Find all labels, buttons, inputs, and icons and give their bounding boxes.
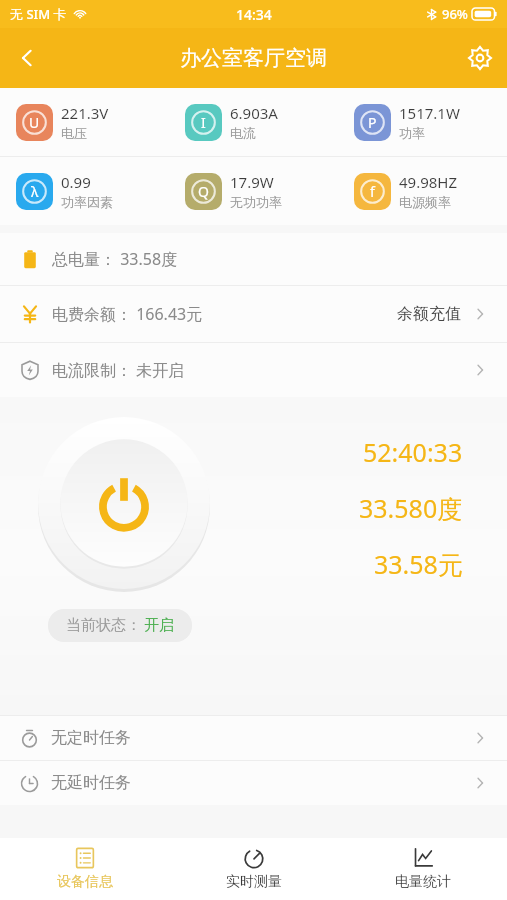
button[interactable]: 电流限制： 未开启 [0,343,507,397]
staticText: 电费余额： 166.43元 [52,303,203,325]
staticText: I [201,113,206,132]
staticText: 无定时任务 [51,728,131,748]
staticText: 电量统计 [395,873,451,891]
staticText: P [368,113,377,132]
button[interactable]: 实时测量 [169,841,338,897]
staticText: 1517.1W [399,103,460,123]
staticText: 总电量： 33.58度 [52,248,178,270]
button[interactable]: 无延时任务 [0,761,507,805]
button[interactable]: Back [0,31,54,85]
staticText: 221.3V [61,103,109,123]
staticText: 无延时任务 [51,773,131,793]
button[interactable]: 当前状态： [48,609,192,642]
staticText: 功率 [399,125,425,141]
staticText: 0.99 [61,172,91,192]
staticText: 电流限制： 未开启 [52,359,185,381]
staticText: 设备信息 [57,873,113,891]
button[interactable]: f [338,172,507,210]
button[interactable]: 总电量： 33.58度 [0,233,507,285]
button[interactable]: Q [169,172,338,210]
staticText: 无 SIM 卡 [10,5,67,23]
staticText: 17.9W [230,172,274,192]
staticText: 余额充值 [397,304,461,324]
staticText: 电流 [230,125,256,141]
staticText: 33.58元 [374,547,463,581]
staticText: 功率因素 [61,194,113,210]
staticText: 当前状态： [66,616,141,635]
button[interactable]: 设备信息 [0,841,169,897]
staticText: 无功功率 [230,194,282,210]
staticText: f [370,182,375,201]
button[interactable]: I [169,103,338,141]
button[interactable]: λ [0,172,169,210]
button[interactable]: 电量统计 [338,841,507,897]
staticText: 52:40:33 [363,435,463,469]
staticText: 6.903A [230,103,278,123]
staticText: 电压 [61,125,87,141]
button[interactable]: U [0,103,169,141]
button[interactable]: Settings [453,31,507,85]
staticText: λ [31,182,39,201]
staticText: 49.98HZ [399,172,458,192]
staticText: 14:34 [236,5,272,24]
button[interactable]: 无定时任务 [0,716,507,760]
button[interactable]: 电费余额： 166.43元 [0,286,507,342]
staticText: 电源频率 [399,194,451,210]
staticText: 96% [442,5,468,23]
staticText: 实时测量 [226,873,282,891]
staticText: U [29,113,40,132]
button[interactable]: Power toggle [38,417,210,589]
staticText: 办公室客厅空调 [180,45,327,71]
staticText: 33.580度 [359,491,463,525]
button[interactable]: P [338,103,507,141]
staticText: 开启 [144,616,174,635]
staticText: Q [198,182,209,201]
